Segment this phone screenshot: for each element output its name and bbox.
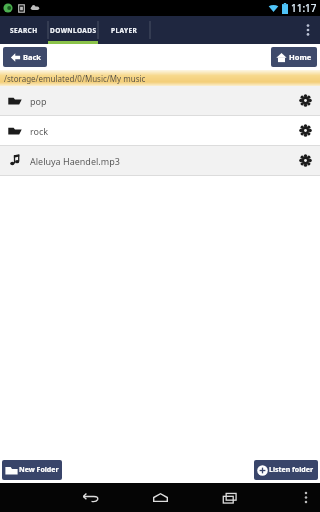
- button[interactable]: Item options: [290, 116, 320, 145]
- button[interactable]: pop: [0, 86, 320, 115]
- button[interactable]: Back: [55, 483, 125, 512]
- staticText: rock: [30, 125, 290, 137]
- button[interactable]: More options: [296, 16, 320, 44]
- staticText: pop: [30, 95, 290, 107]
- staticText: SEARCH: [10, 26, 38, 35]
- staticText: 11:17: [291, 1, 317, 15]
- button[interactable]: Item options: [290, 146, 320, 175]
- staticText: Back: [23, 52, 41, 62]
- staticText: DOWNLOADS: [50, 26, 97, 35]
- button[interactable]: SEARCH: [0, 16, 48, 44]
- button[interactable]: DOWNLOADS: [48, 16, 98, 44]
- button[interactable]: Recent apps: [195, 483, 265, 512]
- button[interactable]: New Folder: [2, 460, 62, 480]
- staticText: New Folder: [19, 465, 59, 475]
- staticText: /storage/emulated/0/Music/My music: [4, 73, 146, 84]
- button[interactable]: Home: [125, 483, 195, 512]
- button[interactable]: Listen folder: [254, 460, 318, 480]
- button[interactable]: PLAYER: [98, 16, 150, 44]
- button[interactable]: More options: [292, 483, 320, 512]
- staticText: Home: [289, 52, 312, 62]
- button[interactable]: rock: [0, 116, 320, 145]
- button[interactable]: Back: [3, 47, 47, 67]
- staticText: PLAYER: [111, 26, 138, 35]
- staticText: Aleluya Haendel.mp3: [30, 155, 290, 167]
- button[interactable]: Aleluya Haendel.mp3: [0, 146, 320, 175]
- staticText: Listen folder: [269, 465, 314, 475]
- button[interactable]: Home: [271, 47, 317, 67]
- button[interactable]: Item options: [290, 86, 320, 115]
